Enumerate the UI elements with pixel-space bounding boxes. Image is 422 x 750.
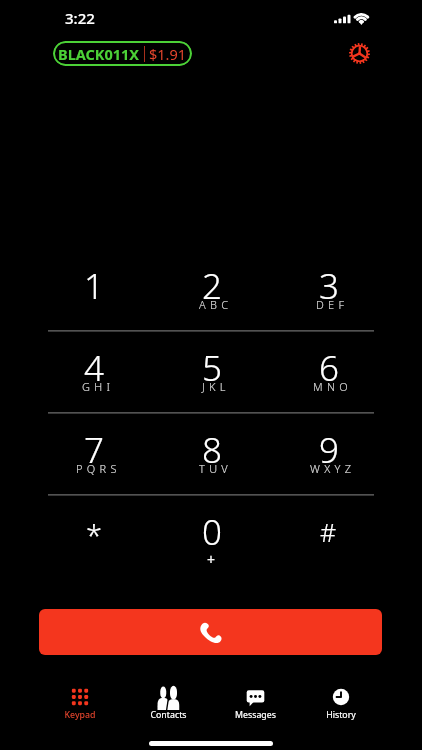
button[interactable]: 0 — [153, 492, 270, 574]
staticText: WXYZ — [310, 461, 356, 476]
staticText: 9 — [319, 426, 339, 474]
staticText: * — [86, 515, 102, 554]
button[interactable]: 8 — [153, 410, 270, 492]
button[interactable]: * — [35, 492, 153, 574]
staticText: 7 — [84, 426, 104, 474]
staticText: ABC — [199, 297, 233, 312]
button[interactable]: Contacts — [127, 676, 209, 726]
staticText: 5 — [202, 344, 222, 392]
staticText: JKL — [202, 379, 230, 394]
staticText: Keypad — [64, 709, 96, 721]
button[interactable]: Messages — [214, 676, 296, 726]
staticText: GHI — [82, 379, 115, 394]
staticText: 6 — [319, 344, 339, 392]
staticText: # — [320, 515, 337, 549]
staticText: Contacts — [150, 709, 187, 721]
button[interactable]: 6 — [270, 328, 387, 410]
staticText: 2 — [202, 262, 222, 310]
staticText: + — [207, 550, 216, 569]
staticText: 3 — [319, 262, 339, 310]
button[interactable]: Keypad — [39, 676, 121, 726]
button[interactable]: 4 — [35, 328, 153, 410]
button[interactable]: # — [270, 492, 387, 574]
staticText: PQRS — [76, 461, 121, 476]
staticText: 4 — [84, 344, 104, 392]
button[interactable]: 1 — [35, 246, 153, 328]
button[interactable]: 3 — [270, 246, 387, 328]
button[interactable]: Call — [39, 609, 382, 655]
staticText: TUV — [199, 461, 233, 476]
staticText: BLACK011X — [58, 44, 140, 64]
staticText: $1.91 — [149, 44, 187, 64]
button[interactable]: 2 — [153, 246, 270, 328]
staticText: 1 — [84, 262, 104, 310]
button[interactable]: 7 — [35, 410, 153, 492]
button[interactable]: BLACK011X — [53, 41, 192, 66]
staticText: 3:22 — [65, 8, 95, 28]
button[interactable]: Settings — [349, 43, 370, 64]
staticText: MNO — [313, 379, 352, 394]
staticText: History — [326, 709, 356, 721]
staticText: DEF — [316, 297, 349, 312]
button[interactable]: 9 — [270, 410, 387, 492]
staticText: 8 — [202, 426, 222, 474]
button[interactable]: 5 — [153, 328, 270, 410]
staticText: 0 — [202, 508, 222, 556]
staticText: Messages — [235, 709, 276, 721]
button[interactable]: History — [300, 676, 382, 726]
